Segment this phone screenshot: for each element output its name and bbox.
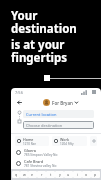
staticText: u [67,172,70,177]
button[interactable]: t [46,171,55,178]
staticText: 1204 Fifty [60,142,74,146]
staticText: Choose destination [26,123,63,128]
staticText: Home [23,137,34,142]
button[interactable]: e [28,171,37,178]
staticText: p [94,172,97,177]
button[interactable]: o [82,171,91,178]
staticText: Your destination [11,8,95,37]
button[interactable]: Cafe Brard [11,158,101,169]
button[interactable]: Choose destination [23,121,94,129]
button[interactable]: u [64,171,73,178]
button[interactable]: i [73,171,82,178]
button[interactable]: y [55,171,64,178]
staticText: t [50,172,52,177]
staticText: Cafe Brard [24,159,44,164]
staticText: q [15,172,18,177]
button[interactable]: Current location [23,110,94,118]
button[interactable]: Gloera [11,147,101,158]
button[interactable]: Back [15,98,24,107]
staticText: For Bryan [52,100,73,106]
staticText: 1210 Rae [23,142,36,146]
staticText: is at your fingertips [11,37,95,66]
staticText: Current location [26,112,57,117]
staticText: y [59,172,61,177]
button[interactable]: q [12,171,20,178]
button[interactable]: p [91,171,100,178]
button[interactable]: Work [52,136,87,146]
button[interactable]: For Bryan [43,99,78,106]
staticText: e [31,172,34,177]
staticText: o [85,172,88,177]
button[interactable]: r [37,171,46,178]
button[interactable]: w [20,171,28,178]
staticText: Work [60,137,70,142]
staticText: w [23,172,26,177]
staticText: Gloera [24,148,36,153]
button[interactable]: More places [90,136,97,146]
staticText: i [77,172,78,177]
staticText: 7:56 [15,90,23,95]
button[interactable]: Home [15,136,49,146]
staticText: 785 Simpsos Valley No [24,153,58,157]
staticText: r [41,172,43,177]
staticText: 781 Shevina valley No [24,164,57,168]
